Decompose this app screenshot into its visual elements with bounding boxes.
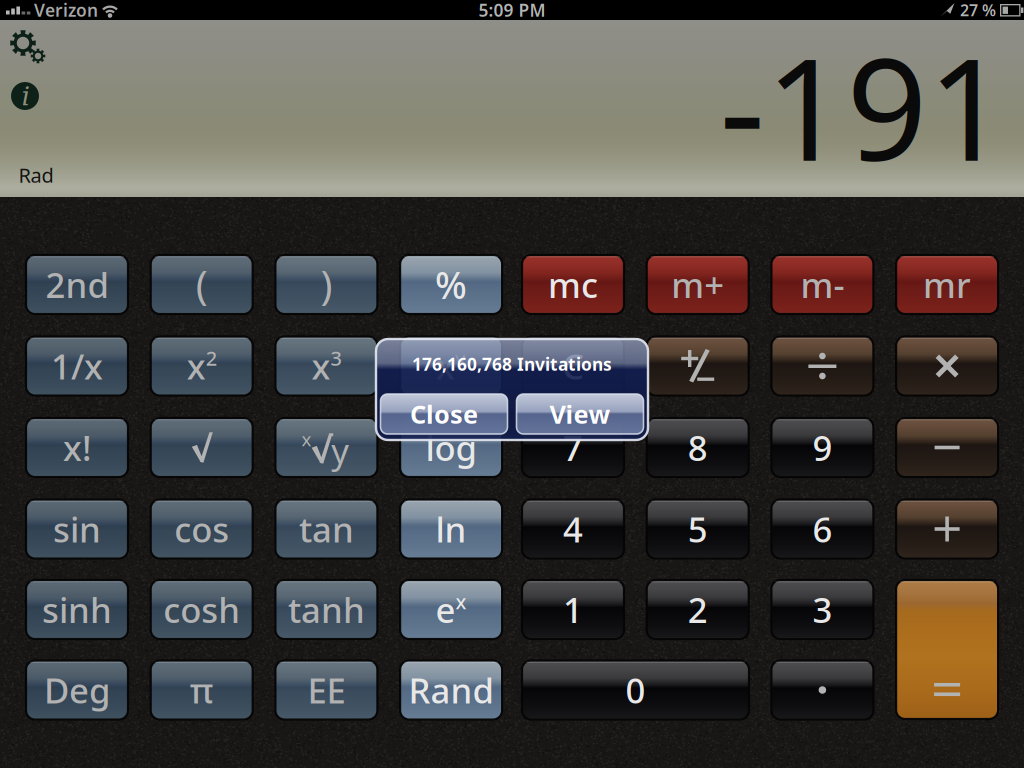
staticText: tan <box>299 506 354 552</box>
button[interactable]: mc <box>522 255 624 314</box>
button[interactable]: 9 <box>771 418 873 477</box>
staticText: 6 <box>812 506 832 552</box>
button[interactable]: ln <box>400 499 502 558</box>
staticText: 5 <box>688 506 708 552</box>
staticText: ) <box>320 258 332 311</box>
staticText: Rad <box>18 162 53 188</box>
button[interactable]: Info <box>5 76 45 116</box>
staticText: x <box>187 343 206 389</box>
staticText: ( <box>196 258 208 311</box>
staticText: m- <box>800 261 844 307</box>
button[interactable]: x <box>275 336 377 395</box>
button[interactable]: tan <box>275 499 377 558</box>
button[interactable]: 2 <box>647 580 749 639</box>
staticText: log <box>426 424 477 470</box>
button[interactable]: Decimal point <box>771 660 873 719</box>
button[interactable]: 7 <box>522 418 624 477</box>
staticText: 1 <box>563 586 583 632</box>
button[interactable]: m+ <box>647 255 749 314</box>
button[interactable]: Minus <box>896 418 998 477</box>
button[interactable]: x <box>151 336 253 395</box>
button[interactable]: % <box>400 255 502 314</box>
staticText: cos <box>174 506 229 552</box>
staticText: 7 <box>563 424 583 470</box>
button[interactable]: 5 <box>647 499 749 558</box>
staticText: y <box>455 345 466 371</box>
staticText: x <box>436 343 455 389</box>
button[interactable]: tanh <box>275 580 377 639</box>
staticText: e <box>436 586 456 632</box>
staticText: x! <box>63 424 91 470</box>
staticText: 2nd <box>45 261 108 307</box>
staticText: cosh <box>163 586 240 632</box>
staticText: 27 % <box>960 0 996 21</box>
button[interactable]: Square root <box>151 418 253 477</box>
staticText: x <box>456 588 467 615</box>
button[interactable]: Plus <box>896 499 998 558</box>
staticText: x <box>302 427 312 451</box>
staticText: 2 <box>206 345 217 371</box>
button[interactable]: Deg <box>26 660 128 719</box>
button[interactable]: ( <box>151 255 253 314</box>
staticText: 4 <box>563 506 583 552</box>
staticText: 176,160,768 Invitations <box>412 352 612 375</box>
staticText: 3 <box>330 345 341 371</box>
staticText: m+ <box>671 261 724 307</box>
button[interactable]: e <box>400 580 502 639</box>
staticText: x <box>311 343 330 389</box>
staticText: % <box>435 260 467 309</box>
button[interactable]: Plus minus <box>647 336 749 395</box>
staticText: y <box>331 427 349 473</box>
staticText: sinh <box>42 586 112 632</box>
button[interactable]: 4 <box>522 499 624 558</box>
staticText: mc <box>548 261 598 307</box>
button[interactable]: 6 <box>771 499 873 558</box>
button[interactable]: cosh <box>151 580 253 639</box>
button[interactable]: π <box>151 660 253 719</box>
staticText: Rand <box>409 667 494 713</box>
staticText: View <box>549 397 610 431</box>
button[interactable]: sinh <box>26 580 128 639</box>
staticText: ln <box>436 506 467 552</box>
staticText: 3 <box>812 586 832 632</box>
staticText: 0 <box>625 667 645 713</box>
button[interactable]: Close <box>380 394 507 434</box>
button[interactable]: Multiply <box>896 336 998 395</box>
button[interactable]: sin <box>26 499 128 558</box>
button[interactable]: EE <box>275 660 377 719</box>
button[interactable]: 0 <box>522 660 749 719</box>
staticText: 5:09 PM <box>478 0 545 21</box>
button[interactable]: mr <box>896 255 998 314</box>
button[interactable]: 1/x <box>26 336 128 395</box>
button[interactable]: log <box>400 418 502 477</box>
staticText: i <box>21 80 30 111</box>
button[interactable]: 2nd <box>26 255 128 314</box>
button[interactable]: x <box>400 336 502 395</box>
staticText: 2 <box>688 586 708 632</box>
staticText: C <box>562 343 584 389</box>
button[interactable]: x <box>275 418 377 477</box>
button[interactable]: Rand <box>400 660 502 719</box>
staticText: EE <box>307 667 345 713</box>
button[interactable]: 8 <box>647 418 749 477</box>
staticText: Deg <box>44 667 110 713</box>
button[interactable]: 1 <box>522 580 624 639</box>
button[interactable]: Equals <box>896 580 998 719</box>
staticText: Verizon <box>34 0 98 21</box>
button[interactable]: x! <box>26 418 128 477</box>
staticText: -191 <box>719 12 1008 200</box>
button[interactable]: cos <box>151 499 253 558</box>
button[interactable]: View <box>516 394 643 434</box>
button[interactable]: C <box>522 336 624 395</box>
staticText: tanh <box>288 586 365 632</box>
staticText: 9 <box>812 424 832 470</box>
button[interactable]: Settings <box>0 22 56 72</box>
staticText: π <box>190 667 214 713</box>
staticText: sin <box>53 506 101 552</box>
button[interactable]: ) <box>275 255 377 314</box>
staticText: 8 <box>688 424 708 470</box>
button[interactable]: m- <box>771 255 873 314</box>
staticText: 1/x <box>51 343 103 389</box>
button[interactable]: 3 <box>771 580 873 639</box>
button[interactable]: Divide <box>771 336 873 395</box>
